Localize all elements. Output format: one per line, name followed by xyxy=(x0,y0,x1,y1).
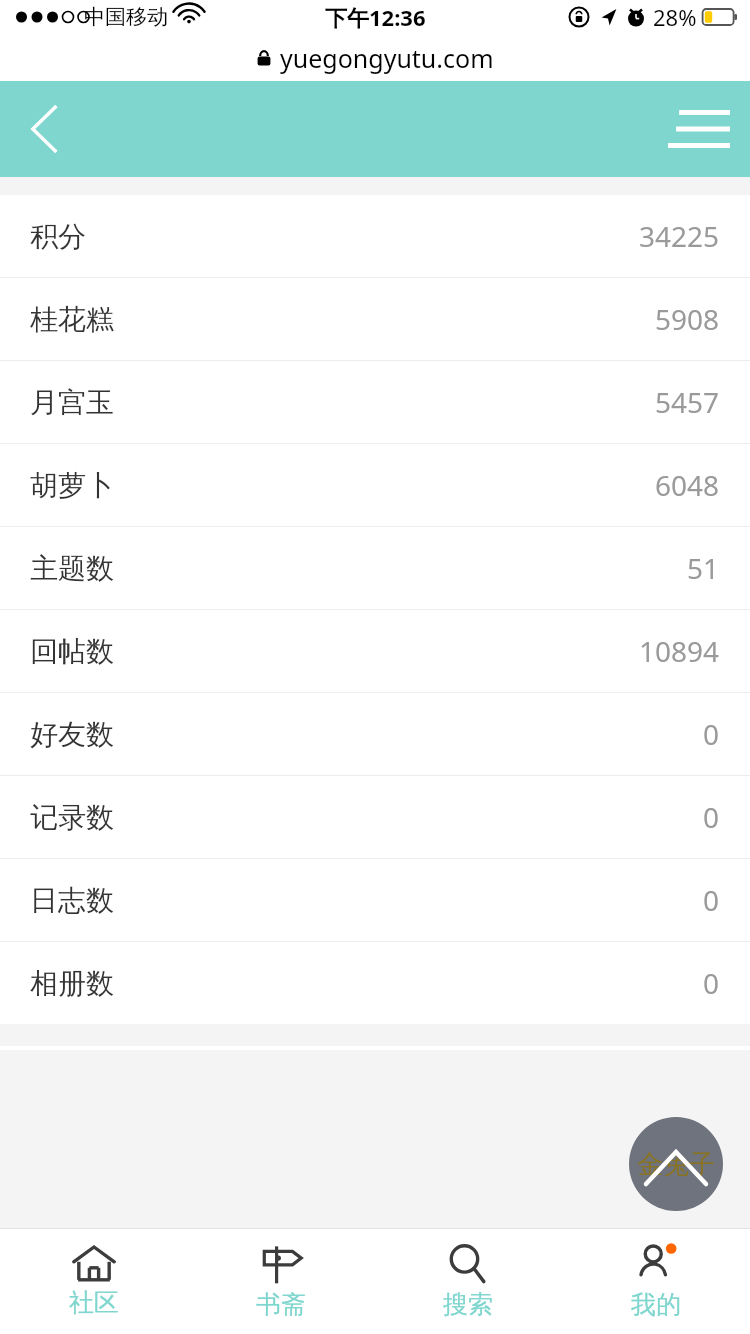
button[interactable]: 记录数 xyxy=(0,776,750,858)
button[interactable]: 相册数 xyxy=(0,942,750,1024)
button[interactable]: 书斋 xyxy=(187,1229,374,1334)
staticText: 0 xyxy=(703,881,720,919)
staticText: 金兔子 xyxy=(637,1148,715,1181)
staticText: 10894 xyxy=(639,632,720,670)
staticText: 胡萝卜 xyxy=(30,468,114,503)
button[interactable]: 桂花糕 xyxy=(0,278,750,360)
staticText: 28% xyxy=(653,2,697,32)
staticText: 34225 xyxy=(639,217,720,255)
staticText: 积分 xyxy=(30,219,86,254)
button[interactable]: yuegongyutu.com xyxy=(0,34,750,81)
button[interactable]: 搜索 xyxy=(374,1229,562,1334)
staticText: 6048 xyxy=(655,466,720,504)
staticText: 日志数 xyxy=(30,883,114,918)
staticText: 0 xyxy=(703,798,720,836)
staticText: 记录数 xyxy=(30,800,114,835)
staticText: 社区 xyxy=(69,1287,119,1318)
button[interactable]: 回到顶部 金兔子 xyxy=(629,1117,723,1211)
button[interactable]: 菜单 xyxy=(656,89,742,169)
staticText: 书斋 xyxy=(256,1289,306,1320)
button[interactable]: 主题数 xyxy=(0,527,750,609)
staticText: 5457 xyxy=(655,383,720,421)
staticText: 0 xyxy=(703,715,720,753)
button[interactable]: 积分 xyxy=(0,195,750,277)
staticText: 桂花糕 xyxy=(30,302,114,337)
button[interactable]: 社区 xyxy=(0,1229,187,1334)
staticText: 下午12:36 xyxy=(325,2,426,32)
button[interactable]: 日志数 xyxy=(0,859,750,941)
staticText: 搜索 xyxy=(443,1289,493,1320)
staticText: 好友数 xyxy=(30,717,114,752)
staticText: 我的 xyxy=(631,1289,681,1320)
staticText: 主题数 xyxy=(30,551,114,586)
staticText: 中国移动 xyxy=(84,4,168,30)
button[interactable]: 返回 xyxy=(8,89,80,169)
staticText: 51 xyxy=(687,549,720,587)
button[interactable]: 胡萝卜 xyxy=(0,444,750,526)
staticText: yuegongyutu.com xyxy=(280,41,494,75)
button[interactable]: 我的 xyxy=(562,1229,750,1334)
button[interactable]: 好友数 xyxy=(0,693,750,775)
staticText: 月宫玉 xyxy=(30,385,114,420)
staticText: 0 xyxy=(703,964,720,1002)
button[interactable]: 月宫玉 xyxy=(0,361,750,443)
staticText: 5908 xyxy=(655,300,720,338)
button[interactable]: 回帖数 xyxy=(0,610,750,692)
staticText: 相册数 xyxy=(30,966,114,1001)
staticText: 回帖数 xyxy=(30,634,114,669)
